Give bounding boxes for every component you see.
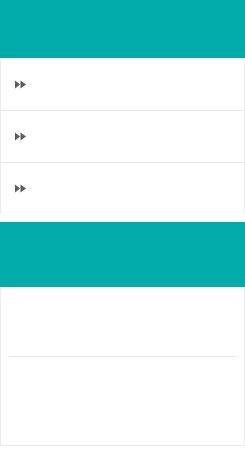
button[interactable]: Item two [0, 111, 245, 162]
button[interactable]: Item one [0, 58, 245, 110]
button[interactable]: Item three [0, 163, 245, 214]
